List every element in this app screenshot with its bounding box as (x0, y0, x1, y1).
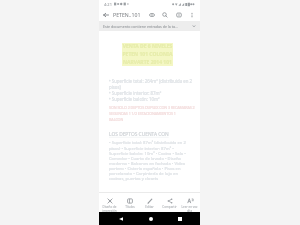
button[interactable]: Diseño de impresión (100, 198, 119, 213)
button[interactable]: Present (173, 9, 184, 20)
staticText: VENTA DE 6 NIVELES PETEN 101 COLONIA NAR… (122, 43, 173, 66)
button[interactable]: Editar (140, 198, 159, 209)
button[interactable]: Back (100, 9, 111, 20)
button[interactable]: Search (159, 9, 170, 20)
button[interactable]: Leer en voz alta (180, 198, 199, 213)
button[interactable]: Comments (146, 9, 157, 20)
button[interactable]: Home (145, 213, 156, 224)
staticText: SON SOLO 2 DEPTOS DUPLEX CON 3 RECAMARAS… (109, 105, 195, 122)
button[interactable]: Compartir (160, 198, 179, 209)
button[interactable]: More options (186, 9, 197, 20)
staticText: Editar (145, 205, 154, 209)
staticText: Este documento contiene entradas de la t… (103, 24, 178, 29)
button[interactable]: Recents (174, 213, 185, 224)
staticText: LOS DEPTOS CUENTA CON (109, 131, 169, 138)
staticText: Leer en voz alta (181, 205, 198, 213)
staticText: • Superficie total: 87m² (distribuida en… (109, 140, 190, 181)
button[interactable]: Back (115, 213, 126, 224)
button[interactable]: Títulos (120, 198, 139, 209)
staticText: Títulos (125, 205, 135, 209)
staticText: 4:21 (104, 2, 112, 7)
staticText: PETEN..101 (113, 11, 141, 18)
staticText: Diseño de impresión (102, 205, 117, 213)
staticText: Compartir (162, 205, 177, 209)
staticText: • Superficie total: 264m² (distribuida e… (109, 78, 193, 102)
